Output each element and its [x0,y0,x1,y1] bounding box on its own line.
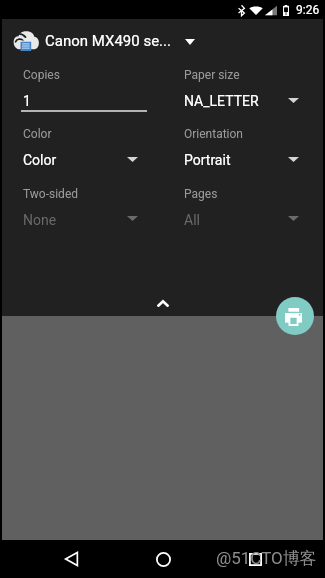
button[interactable]: Orientation [178,124,300,174]
button[interactable]: Back [50,540,92,578]
staticText: Copies [23,68,60,82]
button[interactable]: Print [276,297,314,335]
staticText: None [23,212,57,228]
button[interactable]: Two-sided [17,184,139,234]
staticText: Orientation [184,127,243,141]
staticText: Two-sided [23,187,79,201]
staticText: 9:26 [296,3,320,17]
staticText: Color [23,127,52,141]
staticText: @51CTO博客 [216,548,317,569]
button[interactable]: Paper size [178,65,300,115]
button[interactable]: Home [142,540,184,578]
staticText: Portrait [184,152,231,168]
button[interactable]: Canon MX490 se... [0,19,325,61]
button[interactable]: Recents [234,540,276,578]
button[interactable]: Copies [17,63,157,113]
button[interactable]: Color [17,124,139,174]
staticText: NA_LETTER [184,93,259,109]
staticText: Pages [184,187,218,201]
button[interactable]: Collapse options [139,291,187,315]
staticText: All [184,212,200,228]
staticText: 1 [23,93,31,109]
staticText: Canon MX490 se... [45,32,171,50]
staticText: Color [23,152,57,168]
button[interactable]: Pages [178,184,300,234]
staticText: Paper size [184,68,240,82]
